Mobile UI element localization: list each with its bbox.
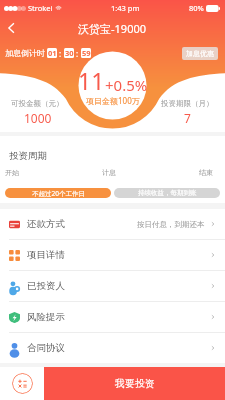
staticText: 合同协议 <box>27 342 65 354</box>
staticText: 80% <box>189 3 204 13</box>
staticText: 结束 <box>199 168 213 177</box>
staticText: 加息倒计时 <box>5 48 45 58</box>
button[interactable]: Calculator <box>0 367 44 400</box>
staticText: : <box>59 48 62 59</box>
staticText: : <box>76 48 79 59</box>
staticText: 11 <box>78 65 105 96</box>
staticText: 7 <box>184 110 191 126</box>
button[interactable]: 已投资人 <box>0 271 225 301</box>
button[interactable]: Back <box>0 16 24 40</box>
button[interactable]: 加息优惠 <box>182 47 218 60</box>
staticText: 还款方式 <box>27 218 65 230</box>
staticText: 项目金额100万 <box>86 95 140 106</box>
button[interactable]: 项目详情 <box>0 240 225 270</box>
staticText: 01 <box>48 48 57 58</box>
staticText: 计息 <box>102 168 116 177</box>
staticText: 加息优惠 <box>186 49 214 58</box>
staticText: 投资周期 <box>9 150 47 162</box>
staticText: 30 <box>65 48 74 58</box>
button[interactable]: 我要投资 <box>44 367 225 400</box>
staticText: 1000 <box>24 110 52 126</box>
staticText: 风险提示 <box>27 311 65 323</box>
staticText: 项目详情 <box>27 249 65 261</box>
button[interactable]: 风险提示 <box>0 302 225 332</box>
staticText: 59 <box>82 48 91 58</box>
staticText: 已投资人 <box>27 280 65 292</box>
staticText: 不超过20个工作日 <box>32 189 85 198</box>
button[interactable]: 还款方式 <box>0 209 225 239</box>
staticText: 持续收益，每期到账 <box>138 189 197 197</box>
staticText: 按日付息，到期还本 <box>137 220 205 229</box>
staticText: +0.5% <box>105 75 148 95</box>
staticText: 可投金额（元） <box>11 99 64 108</box>
staticText: Strokei <box>28 3 53 13</box>
button[interactable]: 合同协议 <box>0 333 225 363</box>
staticText: 我要投资 <box>115 377 155 390</box>
staticText: 沃贷宝-19000 <box>78 21 147 36</box>
staticText: 1:43 pm <box>111 3 140 13</box>
staticText: 开始 <box>5 168 19 177</box>
staticText: 投资期限（月） <box>161 99 214 108</box>
